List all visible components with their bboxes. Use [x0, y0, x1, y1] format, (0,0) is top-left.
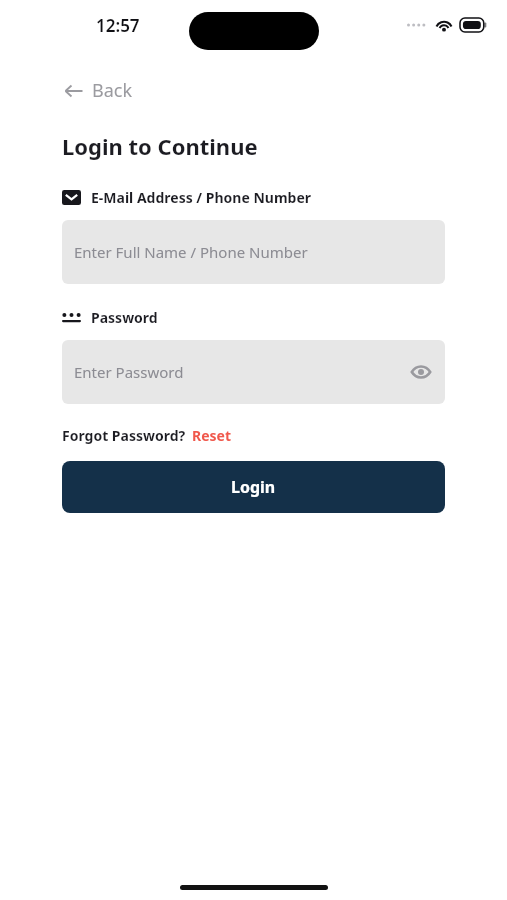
staticText: Forgot Password? [62, 426, 186, 445]
button[interactable]: Login [62, 461, 445, 513]
button[interactable]: Enter Password [62, 340, 445, 404]
staticText: 12:57 [96, 14, 140, 37]
button[interactable]: Reset [192, 426, 232, 445]
button[interactable]: Show password [405, 359, 437, 385]
staticText: E-Mail Address / Phone Number [91, 188, 312, 207]
staticText: Enter Full Name / Phone Number [74, 242, 308, 262]
button[interactable]: Enter Full Name / Phone Number [62, 220, 445, 284]
staticText: Password [91, 308, 158, 327]
staticText: Login to Continue [62, 131, 258, 161]
button[interactable]: Back [58, 72, 139, 109]
staticText: Login [231, 476, 276, 498]
staticText: Back [92, 78, 133, 103]
staticText: Enter Password [74, 362, 184, 382]
staticText: Reset [192, 426, 232, 445]
